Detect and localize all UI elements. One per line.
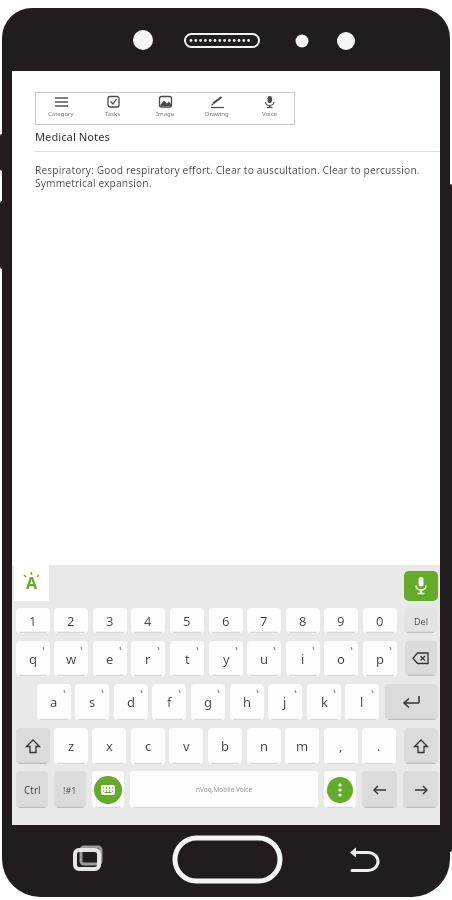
staticText: t	[185, 650, 190, 668]
button[interactable]: Del	[404, 608, 437, 633]
button[interactable]: v	[169, 728, 203, 764]
staticText: 1	[29, 612, 37, 630]
button[interactable]: 1	[16, 608, 50, 633]
staticText: q	[29, 650, 37, 668]
button[interactable]: u	[247, 641, 281, 676]
button[interactable]: o	[324, 641, 358, 676]
staticText: b	[221, 737, 229, 755]
button[interactable]: 4	[131, 608, 165, 633]
staticText: g	[204, 693, 212, 711]
button[interactable]: w	[54, 641, 88, 676]
button[interactable]: t	[170, 641, 204, 676]
button[interactable]: g	[191, 684, 225, 720]
staticText: w	[66, 650, 77, 668]
staticText: Respiratory: Good respiratory effort. Cl…	[35, 163, 420, 190]
button[interactable]: Drawing	[191, 92, 243, 125]
button[interactable]: a	[37, 684, 71, 720]
button[interactable]: k	[307, 684, 341, 720]
staticText: A	[26, 572, 38, 594]
button[interactable]: 0	[363, 608, 397, 633]
button[interactable]	[403, 771, 438, 808]
button[interactable]: !#1	[54, 771, 86, 808]
button[interactable]: q	[16, 641, 50, 676]
button[interactable]: 6	[209, 608, 243, 633]
button[interactable]: 7	[247, 608, 281, 633]
button[interactable]: .	[362, 728, 396, 764]
staticText: 6	[222, 612, 230, 630]
button[interactable]: nVoq.Mobile Voice	[130, 771, 318, 808]
button[interactable]	[16, 728, 50, 764]
button[interactable]: Tasks	[87, 92, 139, 125]
staticText: Medical Notes	[35, 129, 110, 144]
staticText: 0	[376, 612, 384, 630]
staticText: 4	[144, 612, 152, 630]
staticText: ,	[339, 737, 343, 755]
staticText: p	[376, 650, 384, 668]
button[interactable]: Category	[35, 92, 87, 125]
button[interactable]: 9	[324, 608, 358, 633]
staticText: k	[321, 693, 328, 711]
button[interactable]: h	[230, 684, 264, 720]
button[interactable]: x	[92, 728, 126, 764]
staticText: z	[68, 737, 75, 755]
staticText: s	[89, 693, 96, 711]
button[interactable]	[405, 641, 437, 676]
staticText: j	[283, 693, 287, 711]
staticText: Del	[414, 615, 428, 627]
button[interactable]: A	[14, 565, 49, 601]
staticText: 2	[67, 612, 75, 630]
button[interactable]: Ctrl	[16, 771, 48, 808]
staticText: 8	[299, 612, 307, 630]
button[interactable]: 8	[286, 608, 320, 633]
button[interactable]: i	[286, 641, 320, 676]
staticText: x	[106, 737, 113, 755]
button[interactable]	[404, 571, 438, 601]
button[interactable]: p	[363, 641, 397, 676]
button[interactable]: b	[208, 728, 242, 764]
staticText: Voice	[262, 110, 277, 118]
staticText: e	[106, 650, 114, 668]
button[interactable]	[385, 684, 438, 720]
staticText: !#1	[63, 784, 77, 796]
staticText: .	[377, 737, 381, 755]
staticText: Image	[156, 110, 175, 118]
button[interactable]: j	[268, 684, 302, 720]
button[interactable]: 2	[54, 608, 88, 633]
button[interactable]	[404, 728, 438, 764]
button[interactable]: n	[247, 728, 281, 764]
button[interactable]: z	[54, 728, 88, 764]
staticText: Tasks	[105, 110, 121, 118]
staticText: 5	[183, 612, 191, 630]
button[interactable]: l	[345, 684, 379, 720]
staticText: Drawing	[205, 110, 229, 118]
button[interactable]: c	[131, 728, 165, 764]
button[interactable]: Image	[139, 92, 191, 125]
staticText: h	[243, 693, 252, 711]
button[interactable]: s	[75, 684, 109, 720]
staticText: y	[223, 650, 230, 668]
button[interactable]: Voice	[243, 92, 295, 125]
staticText: r	[145, 650, 151, 668]
button[interactable]: r	[131, 641, 165, 676]
staticText: v	[183, 737, 190, 755]
button[interactable]: 5	[170, 608, 204, 633]
button[interactable]: e	[93, 641, 127, 676]
button[interactable]: m	[285, 728, 319, 764]
button[interactable]: f	[152, 684, 186, 720]
button[interactable]	[92, 771, 124, 808]
staticText: o	[337, 650, 345, 668]
staticText: Ctrl	[24, 783, 41, 797]
staticText: n	[260, 737, 269, 755]
button[interactable]: ,	[324, 728, 358, 764]
button[interactable]: 3	[93, 608, 127, 633]
button[interactable]	[324, 771, 356, 808]
button[interactable]	[362, 771, 397, 808]
staticText: l	[360, 693, 364, 711]
button[interactable]: d	[114, 684, 148, 720]
staticText: i	[301, 650, 305, 668]
staticText: 9	[337, 612, 345, 630]
staticText: Category	[48, 110, 74, 118]
staticText: u	[260, 650, 269, 668]
button[interactable]: y	[209, 641, 243, 676]
staticText: f	[167, 693, 172, 711]
